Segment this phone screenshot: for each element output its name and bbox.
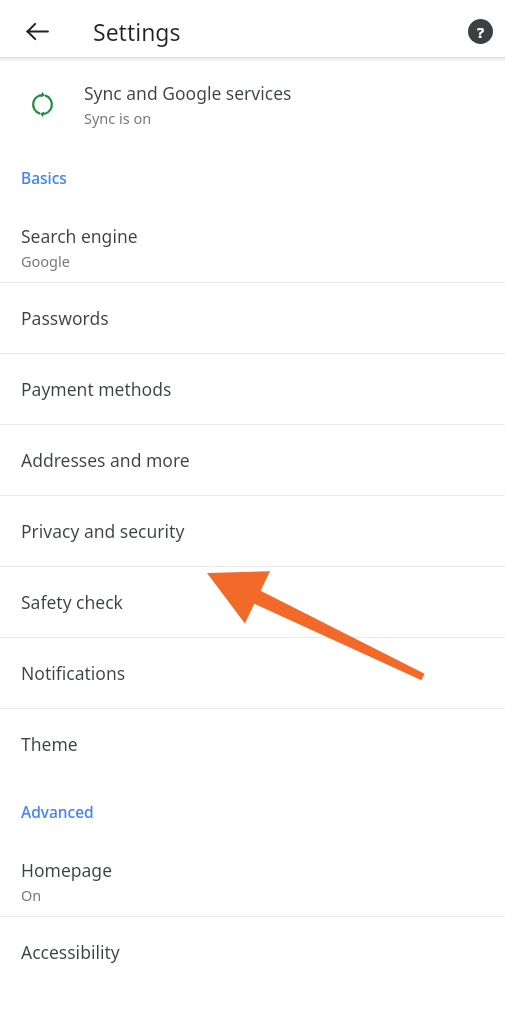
button[interactable]: Search engine (0, 212, 505, 282)
staticText: Google (21, 251, 70, 271)
staticText: Advanced (21, 801, 94, 822)
staticText: On (21, 885, 42, 905)
staticText: Homepage (21, 858, 112, 882)
button[interactable]: Help (456, 7, 504, 55)
staticText: Addresses and more (21, 448, 190, 472)
button[interactable]: Theme (0, 709, 505, 779)
staticText: Notifications (21, 661, 126, 685)
staticText: Privacy and security (21, 519, 185, 543)
staticText: Theme (21, 732, 78, 756)
button[interactable]: Safety check (0, 567, 505, 637)
staticText: Passwords (21, 306, 109, 330)
staticText: Safety check (21, 590, 123, 614)
staticText: Settings (93, 16, 181, 47)
button[interactable]: Passwords (0, 283, 505, 353)
button[interactable]: Privacy and security (0, 496, 505, 566)
button[interactable]: Accessibility (0, 917, 505, 987)
staticText: Accessibility (21, 940, 120, 964)
button[interactable]: Addresses and more (0, 425, 505, 495)
button[interactable]: Payment methods (0, 354, 505, 424)
staticText: Basics (21, 167, 67, 188)
staticText: Sync and Google services (84, 81, 292, 105)
staticText: Sync is on (84, 108, 152, 128)
button[interactable]: Back (13, 7, 61, 55)
button[interactable]: Homepage (0, 846, 505, 916)
button[interactable]: Notifications (0, 638, 505, 708)
staticText: Payment methods (21, 377, 172, 401)
staticText: Search engine (21, 224, 138, 248)
button[interactable]: Sync and Google services (0, 67, 505, 141)
staticText: ? (477, 22, 485, 42)
